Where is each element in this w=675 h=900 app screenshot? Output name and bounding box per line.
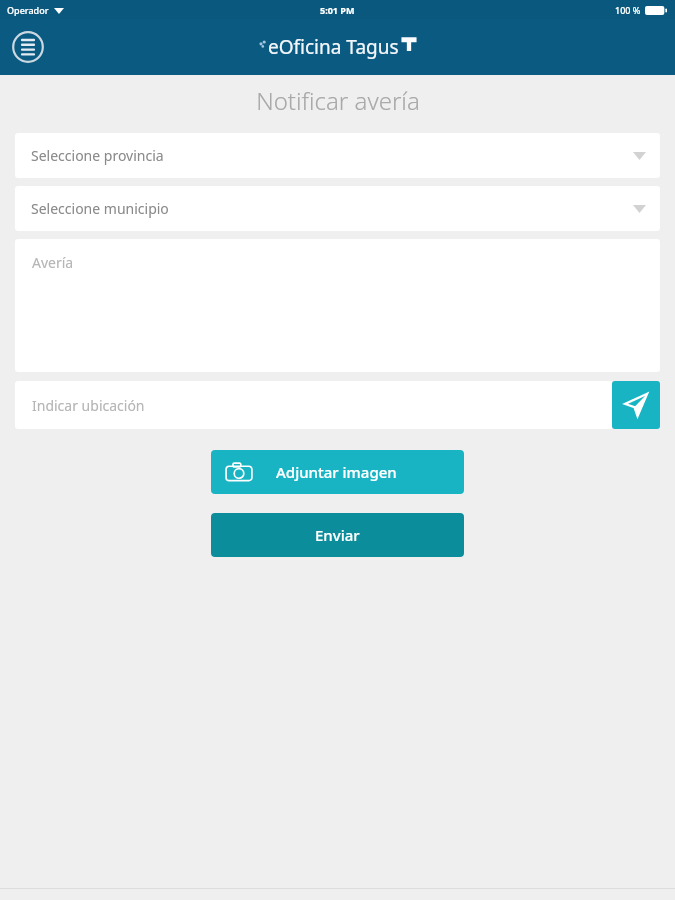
- staticText: Notificar avería: [256, 84, 420, 117]
- staticText: Seleccione provincia: [31, 146, 164, 165]
- staticText: Seleccione municipio: [31, 199, 169, 218]
- button[interactable]: Adjuntar imagen: [211, 450, 464, 494]
- button[interactable]: Indicar ubicación: [15, 381, 612, 429]
- staticText: 5:01 PM: [320, 4, 355, 16]
- button[interactable]: Obtener ubicación: [612, 381, 660, 429]
- button[interactable]: Enviar: [211, 513, 464, 557]
- staticText: Enviar: [315, 525, 360, 545]
- button[interactable]: Menu: [9, 28, 47, 66]
- staticText: 100 %: [615, 4, 641, 16]
- staticText: Avería: [32, 253, 74, 272]
- staticText: Operador: [7, 4, 49, 16]
- button[interactable]: Seleccione provincia: [15, 133, 660, 178]
- button[interactable]: Seleccione municipio: [15, 186, 660, 231]
- staticText: Indicar ubicación: [32, 396, 145, 415]
- staticText: Adjuntar imagen: [276, 462, 397, 482]
- staticText: eOficina Tagus: [268, 34, 399, 60]
